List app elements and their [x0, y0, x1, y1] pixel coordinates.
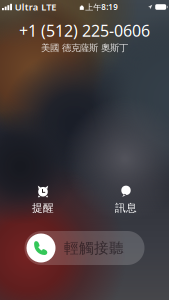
staticText: 上午8:19 — [85, 2, 118, 12]
staticText: 提醒 — [32, 201, 54, 214]
staticText: LTE — [41, 1, 56, 13]
button[interactable]: 提醒 — [16, 185, 70, 215]
staticText: Ultra — [15, 1, 38, 13]
staticText: +1 (512) 225-0606 — [19, 20, 150, 41]
staticText: 美國 德克薩斯 奧斯丁 — [41, 42, 128, 54]
staticText: 訊息 — [115, 201, 137, 214]
button[interactable]: 輕觸接聽 — [24, 231, 144, 265]
button[interactable]: 訊息 — [99, 185, 153, 215]
staticText: 輕觸接聽 — [64, 239, 124, 257]
